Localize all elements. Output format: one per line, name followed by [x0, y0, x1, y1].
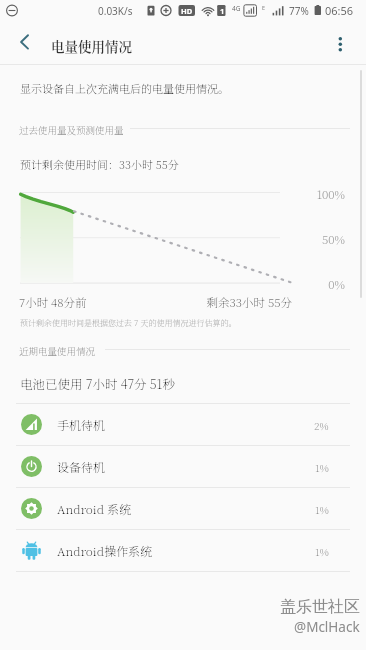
staticText: 盖乐世社区 — [280, 597, 360, 617]
staticText: 0.03K/s — [98, 4, 133, 18]
staticText: 1% — [315, 502, 329, 516]
staticText: 电池已使用 7小时 47分 51秒 — [20, 375, 176, 393]
staticText: 设备待机 — [57, 458, 106, 475]
staticText: 电量使用情况 — [51, 36, 132, 55]
staticText: Android操作系统 — [57, 542, 153, 559]
staticText: 0% — [291, 276, 345, 293]
staticText: 预计剩余使用时间：33小时 55分 — [20, 156, 179, 172]
staticText: @MclHack — [294, 618, 360, 636]
staticText: HD — [181, 6, 193, 16]
button[interactable]: Android操作系统 — [0, 530, 366, 571]
staticText: 7小时 48分前 — [19, 294, 87, 311]
staticText: 1% — [315, 460, 329, 474]
staticText: 显示设备自上次充满电后的电量使用情况。 — [20, 80, 229, 96]
staticText: 4G — [232, 4, 241, 13]
staticText: 手机待机 — [57, 416, 106, 433]
staticText: 06:56 — [325, 3, 354, 18]
staticText: 2% — [314, 418, 329, 432]
staticText: 预计剩余使用时间是根据您过去 7 天的使用情况进行估算的。 — [20, 317, 237, 328]
staticText: 50% — [291, 231, 345, 248]
staticText: 剩余33小时 55分 — [150, 294, 292, 311]
staticText: E — [262, 4, 266, 11]
staticText: 过去使用量及预测使用量 — [19, 123, 124, 137]
staticText: Android 系统 — [57, 500, 132, 517]
button[interactable]: 设备待机 — [0, 446, 366, 487]
button[interactable]: Back — [5, 23, 43, 61]
staticText: 1 — [220, 6, 225, 16]
staticText: 100% — [291, 186, 345, 203]
button[interactable]: 手机待机 — [0, 404, 366, 445]
staticText: 近期电量使用情况 — [19, 344, 96, 358]
button[interactable]: Android 系统 — [0, 488, 366, 529]
staticText: 77% — [289, 4, 309, 18]
button[interactable]: More options — [318, 22, 356, 65]
staticText: 1% — [315, 544, 329, 558]
